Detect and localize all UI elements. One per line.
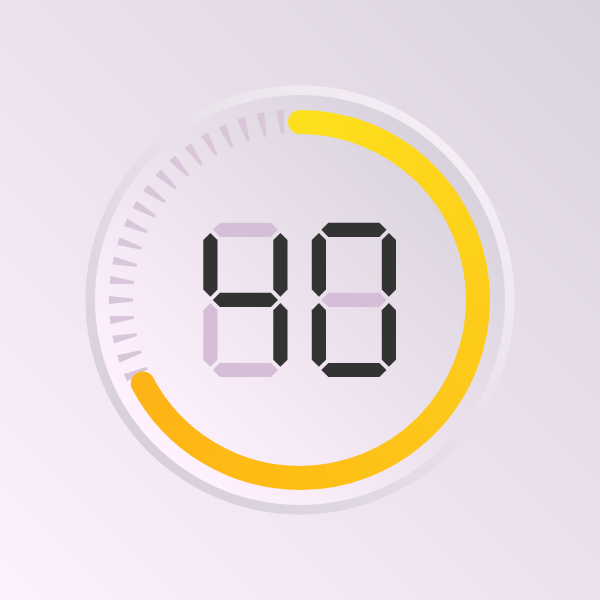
- button[interactable]: Countdown timer, 40 minutes remaining: [0, 0, 600, 600]
